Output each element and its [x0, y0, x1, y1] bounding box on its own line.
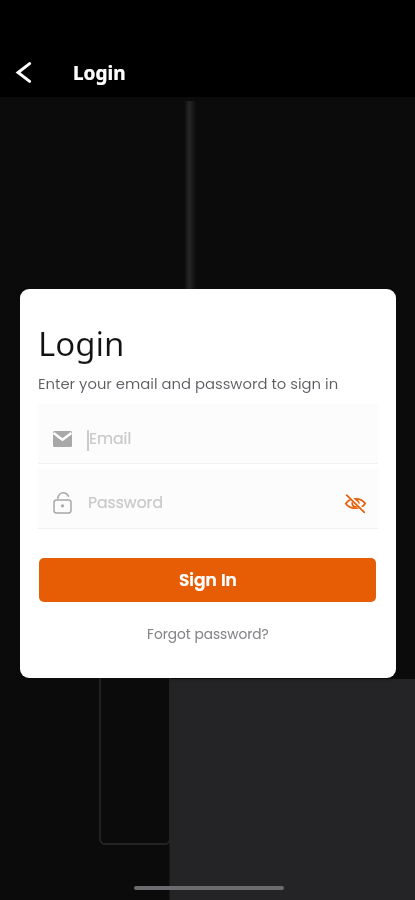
- button[interactable]: Back: [0, 49, 47, 96]
- button[interactable]: Password: [38, 469, 378, 528]
- button[interactable]: Show password: [335, 483, 375, 523]
- button[interactable]: Email: [38, 404, 378, 463]
- staticText: Login: [73, 60, 126, 86]
- staticText: Email: [89, 428, 132, 450]
- staticText: Password: [88, 492, 163, 514]
- button[interactable]: Forgot password?: [139, 621, 277, 648]
- staticText: Login: [38, 321, 125, 366]
- staticText: Sign In: [179, 568, 237, 592]
- staticText: Enter your email and password to sign in: [38, 373, 339, 394]
- button[interactable]: Sign In: [39, 558, 376, 602]
